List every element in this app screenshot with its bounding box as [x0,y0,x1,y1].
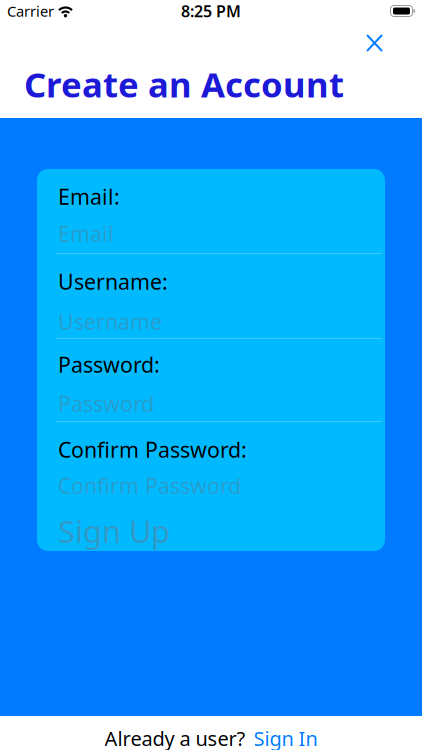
staticText: Sign Up [58,511,170,551]
staticText: Sign In [253,725,317,750]
staticText: Confirm Password [58,471,241,500]
staticText: Username: [58,267,168,296]
button[interactable]: Close [366,34,383,52]
staticText: Already a user? [104,725,245,750]
staticText: Email [58,219,114,248]
staticText: Confirm Password: [58,435,247,464]
staticText: Username [58,307,162,336]
staticText: Email: [58,182,120,211]
staticText: Password: [58,350,160,379]
button[interactable]: Sign In [253,725,317,750]
staticText: Carrier [7,1,54,21]
button[interactable]: Sign Up [37,516,170,546]
staticText: 8:25 PM [181,0,241,22]
staticText: Password [58,389,154,418]
staticText: Create an Account [24,61,344,107]
